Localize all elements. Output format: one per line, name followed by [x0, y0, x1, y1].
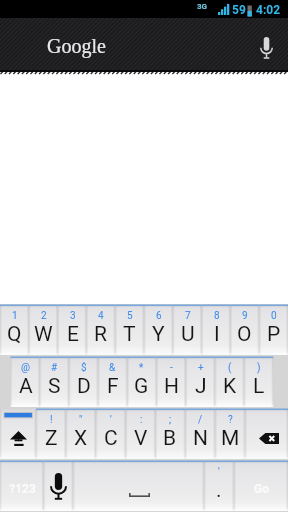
button[interactable]: ?: [215, 408, 245, 460]
button[interactable]: 4: [86, 304, 115, 356]
staticText: +: [198, 362, 204, 374]
staticText: 8: [214, 310, 220, 322]
staticText: C: [104, 426, 118, 451]
staticText: 3: [70, 310, 76, 322]
staticText: J: [195, 374, 207, 399]
button[interactable]: 2: [29, 304, 58, 356]
staticText: ": [79, 414, 83, 426]
button[interactable]: 0: [259, 304, 288, 356]
staticText: ?123: [9, 482, 36, 496]
staticText: 59: [232, 3, 246, 17]
staticText: V: [134, 426, 148, 451]
staticText: D: [77, 374, 91, 399]
button[interactable]: (: [215, 356, 244, 408]
staticText: Y: [152, 322, 165, 347]
staticText: 0: [271, 310, 277, 322]
button[interactable]: 9: [230, 304, 259, 356]
staticText: &: [109, 362, 116, 374]
staticText: R: [94, 322, 107, 347]
staticText: -: [170, 362, 173, 374]
button[interactable]: ): [244, 356, 273, 408]
staticText: S: [48, 374, 61, 399]
button[interactable]: 3: [58, 304, 87, 356]
staticText: !: [50, 414, 53, 426]
staticText: (: [228, 362, 232, 374]
button[interactable]: ?123: [0, 460, 44, 512]
staticText: ': [110, 414, 112, 426]
staticText: A: [19, 374, 33, 399]
staticText: #: [51, 362, 58, 374]
staticText: F: [107, 374, 119, 399]
button[interactable]: Go: [234, 460, 288, 512]
button[interactable]: -: [157, 356, 186, 408]
staticText: 1: [12, 310, 18, 322]
staticText: X: [74, 426, 88, 451]
staticText: O: [237, 322, 252, 347]
staticText: N: [193, 426, 208, 451]
staticText: *: [139, 362, 144, 374]
staticText: $: [81, 362, 87, 374]
staticText: /: [198, 414, 203, 426]
staticText: H: [164, 374, 179, 399]
button[interactable]: Delete: [245, 408, 288, 460]
staticText: Google: [47, 35, 106, 57]
staticText: G: [134, 374, 149, 399]
staticText: 6: [156, 310, 162, 322]
staticText: ': [218, 466, 220, 478]
button[interactable]: *: [127, 356, 156, 408]
staticText: P: [267, 322, 281, 347]
button[interactable]: Voice input: [44, 460, 74, 512]
staticText: 3G: [197, 2, 208, 11]
button[interactable]: ': [96, 408, 126, 460]
button[interactable]: #: [40, 356, 69, 408]
staticText: ): [257, 362, 261, 374]
staticText: B: [163, 426, 177, 451]
staticText: @: [21, 362, 30, 374]
staticText: 2: [41, 310, 47, 322]
staticText: E: [67, 322, 79, 347]
button[interactable]: 1: [0, 304, 29, 356]
button[interactable]: 7: [173, 304, 202, 356]
staticText: 9: [242, 310, 248, 322]
staticText: Q: [7, 322, 22, 347]
staticText: .: [216, 478, 222, 503]
staticText: Z: [45, 426, 58, 451]
staticText: U: [181, 322, 195, 347]
button[interactable]: Space: [73, 460, 204, 512]
staticText: W: [34, 322, 53, 347]
button[interactable]: Voice search: [244, 22, 288, 72]
staticText: :: [140, 414, 143, 426]
staticText: I: [214, 322, 220, 347]
staticText: 7: [185, 310, 191, 322]
button[interactable]: $: [69, 356, 98, 408]
staticText: L: [253, 374, 265, 399]
button[interactable]: @: [11, 356, 40, 408]
button[interactable]: +: [186, 356, 215, 408]
staticText: T: [123, 322, 136, 347]
button[interactable]: ": [66, 408, 96, 460]
button[interactable]: ;: [155, 408, 185, 460]
button[interactable]: 5: [115, 304, 144, 356]
button[interactable]: !: [36, 408, 66, 460]
staticText: 4:02: [256, 3, 281, 17]
button[interactable]: 6: [144, 304, 173, 356]
button[interactable]: Shift: [0, 408, 36, 460]
staticText: 5: [127, 310, 133, 322]
button[interactable]: :: [126, 408, 156, 460]
staticText: ?: [228, 414, 233, 426]
staticText: Go: [254, 482, 269, 496]
staticText: 4: [98, 310, 104, 322]
staticText: M: [221, 426, 240, 451]
button[interactable]: ': [204, 460, 234, 512]
button[interactable]: /: [185, 408, 215, 460]
button[interactable]: 8: [202, 304, 231, 356]
button[interactable]: &: [98, 356, 127, 408]
staticText: ;: [169, 414, 172, 426]
staticText: K: [223, 374, 237, 399]
